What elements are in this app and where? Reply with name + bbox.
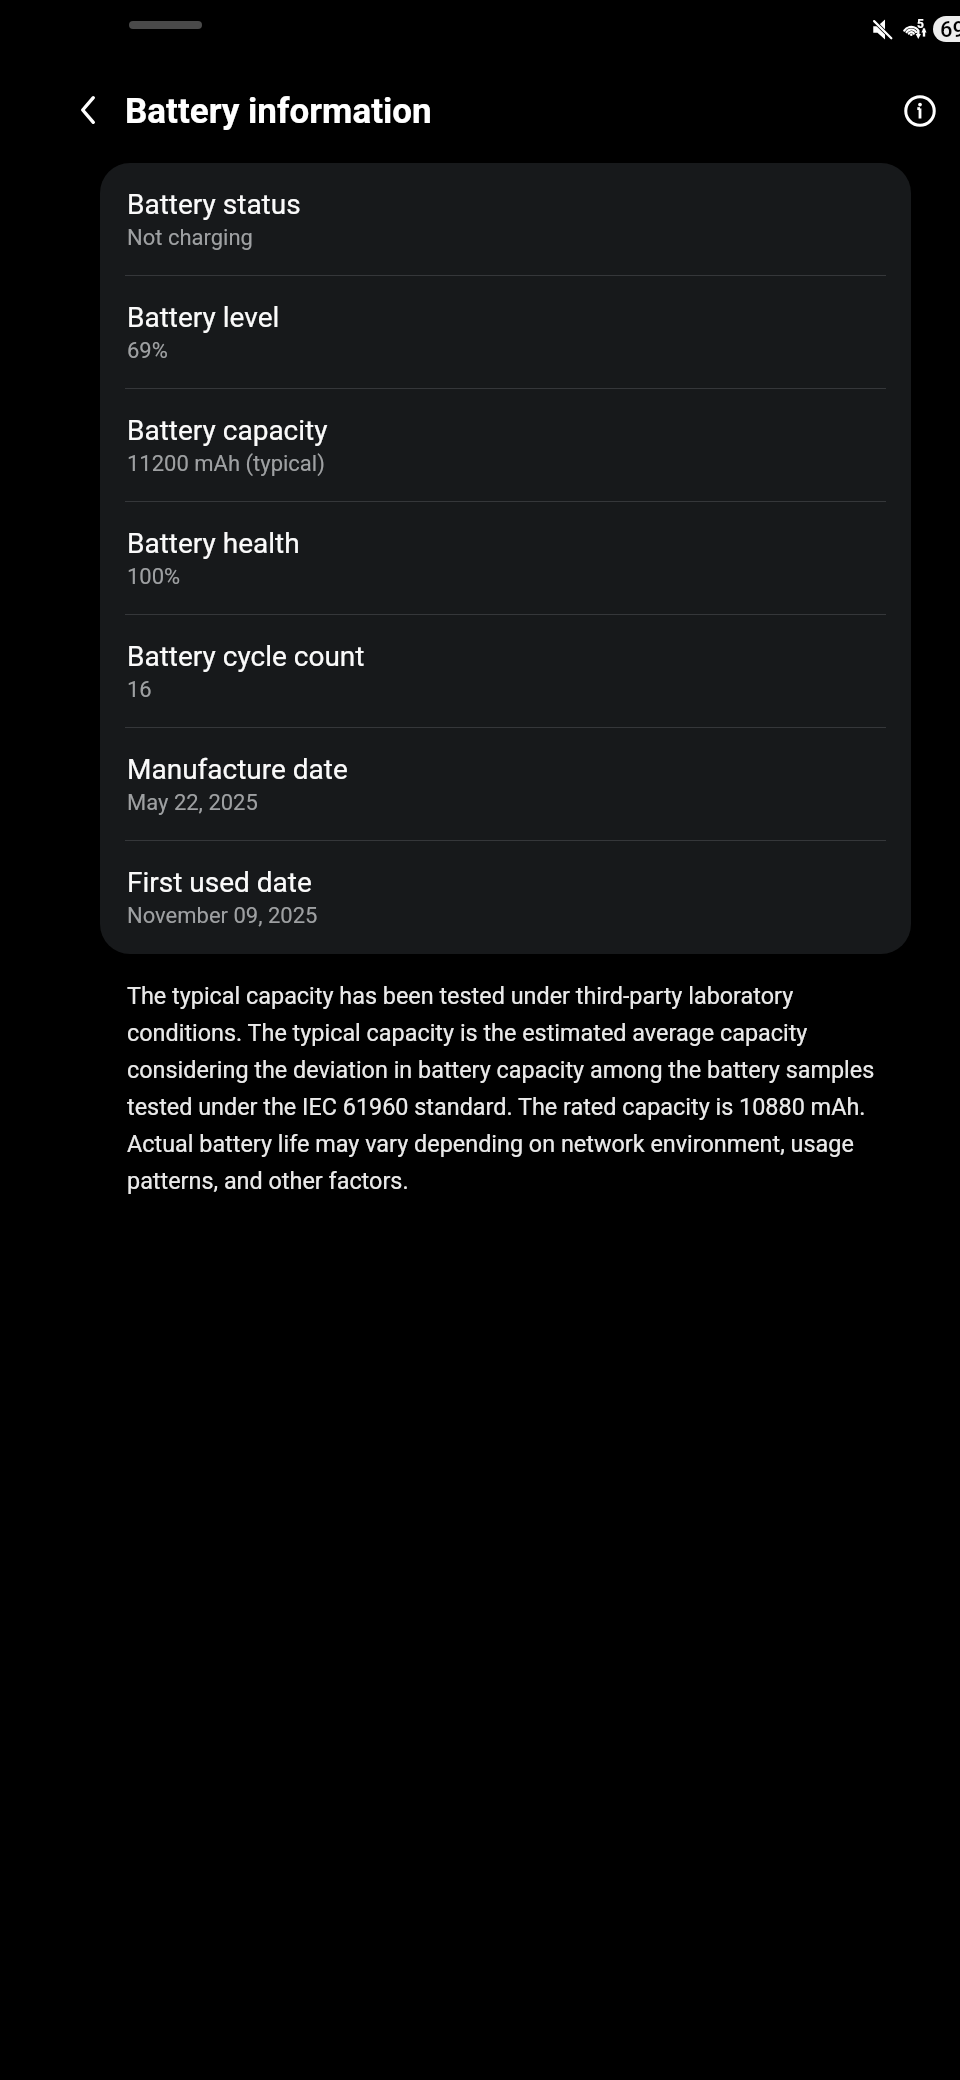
button[interactable]: Battery capacity — [100, 389, 911, 502]
staticText: Battery capacity — [127, 414, 328, 447]
staticText: Battery health — [127, 527, 300, 560]
staticText: Not charging — [127, 225, 253, 251]
button[interactable]: Navigate up — [52, 75, 124, 147]
staticText: 69% — [127, 338, 168, 364]
staticText: November 09, 2025 — [127, 903, 318, 929]
staticText: Battery information — [125, 91, 432, 132]
staticText: 16 — [127, 677, 152, 703]
button[interactable]: Battery level — [100, 276, 911, 389]
button[interactable]: Battery cycle count — [100, 615, 911, 728]
staticText: Battery cycle count — [127, 640, 365, 673]
button[interactable]: Battery health — [100, 502, 911, 615]
staticText: May 22, 2025 — [127, 790, 258, 816]
button[interactable]: Manufacture date — [100, 728, 911, 841]
button[interactable]: Information — [884, 75, 956, 147]
staticText: Battery level — [127, 301, 280, 334]
staticText: 5 — [917, 17, 924, 31]
staticText: 69 — [940, 17, 960, 42]
staticText: The typical capacity has been tested und… — [127, 975, 882, 1197]
button[interactable]: First used date — [100, 841, 911, 954]
button[interactable]: Battery status — [100, 163, 911, 276]
staticText: Manufacture date — [127, 753, 348, 786]
staticText: 100% — [127, 564, 181, 590]
staticText: 11200 mAh (typical) — [127, 451, 325, 477]
staticText: First used date — [127, 866, 312, 899]
staticText: Battery status — [127, 188, 301, 221]
